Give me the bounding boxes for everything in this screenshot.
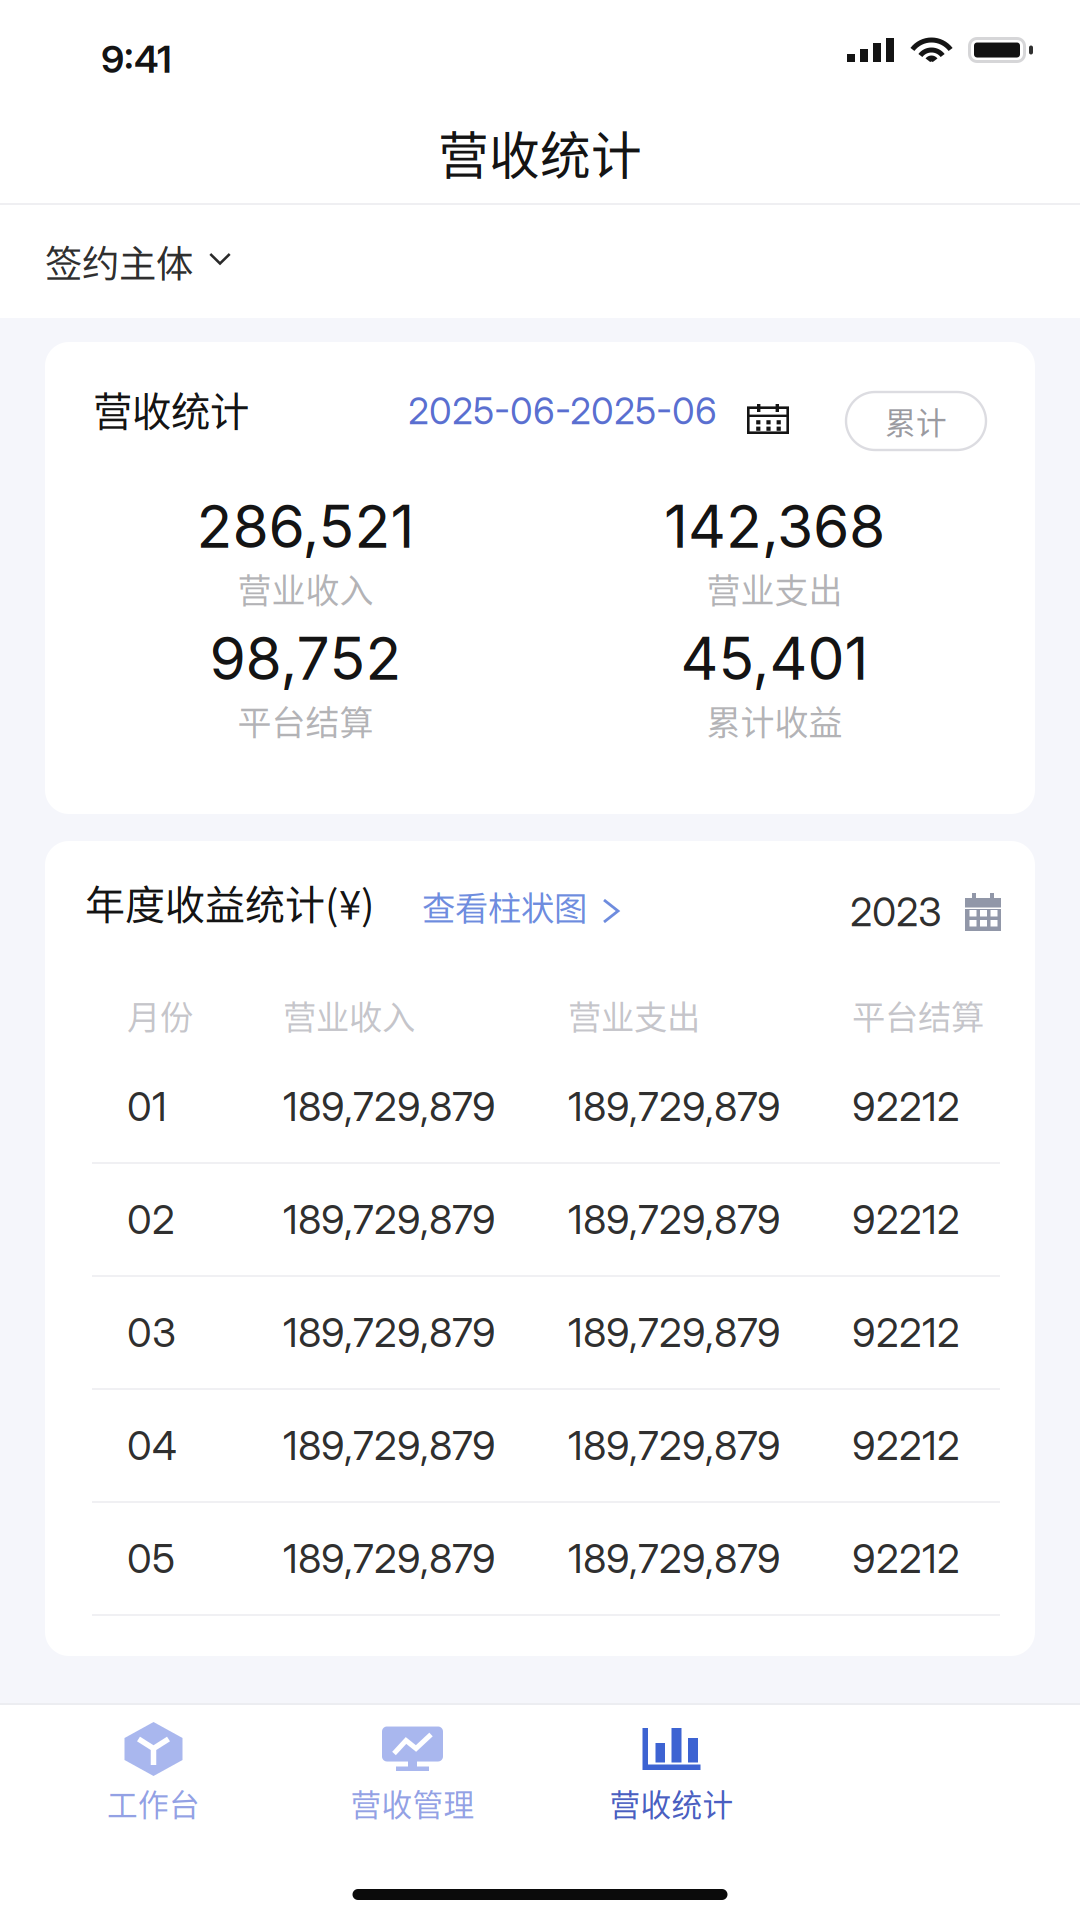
button[interactable]: 2023 bbox=[850, 888, 1001, 936]
staticText: 03 bbox=[127, 1308, 176, 1357]
staticText: 营收管理 bbox=[350, 1781, 474, 1825]
button[interactable]: 营收统计 bbox=[542, 1705, 801, 1845]
staticText: 查看柱状图 bbox=[422, 882, 587, 930]
staticText: 营收统计 bbox=[93, 380, 249, 437]
staticText: 92212 bbox=[852, 1308, 960, 1357]
staticText: 平台结算 bbox=[852, 991, 984, 1039]
staticText: 营业支出 bbox=[568, 991, 700, 1039]
staticText: 营业收入 bbox=[283, 991, 415, 1039]
staticText: 45,401 bbox=[680, 623, 868, 694]
staticText: 签约主体 bbox=[45, 234, 193, 289]
button[interactable]: 2025-06-2025-06 bbox=[408, 389, 789, 433]
staticText: 98,752 bbox=[209, 623, 401, 694]
staticText: 平台结算 bbox=[237, 696, 373, 745]
staticText: 92212 bbox=[852, 1082, 960, 1131]
staticText: 92212 bbox=[852, 1421, 960, 1470]
staticText: 189,729,879 bbox=[568, 1308, 781, 1357]
button[interactable]: 签约主体 bbox=[45, 208, 231, 315]
staticText: 02 bbox=[127, 1195, 175, 1244]
staticText: 189,729,879 bbox=[568, 1082, 781, 1131]
staticText: 2023 bbox=[850, 888, 942, 936]
staticText: 营业支出 bbox=[706, 564, 842, 613]
staticText: 累计 bbox=[885, 399, 947, 443]
staticText: 92212 bbox=[852, 1534, 960, 1583]
button[interactable]: 查看柱状图 bbox=[422, 882, 621, 930]
staticText: 2025-06-2025-06 bbox=[408, 389, 717, 433]
staticText: 工作台 bbox=[107, 1781, 200, 1825]
staticText: 189,729,879 bbox=[568, 1421, 781, 1470]
staticText: 92212 bbox=[852, 1195, 960, 1244]
staticText: 189,729,879 bbox=[283, 1421, 496, 1470]
staticText: 189,729,879 bbox=[283, 1195, 496, 1244]
staticText: 营收统计 bbox=[438, 116, 642, 189]
staticText: 9:41 bbox=[101, 36, 172, 82]
staticText: 05 bbox=[127, 1534, 175, 1583]
staticText: 189,729,879 bbox=[568, 1534, 781, 1583]
button[interactable]: 营收管理 bbox=[283, 1705, 542, 1845]
button[interactable]: 累计 bbox=[846, 392, 986, 450]
staticText: 01 bbox=[127, 1082, 167, 1131]
staticText: 286,521 bbox=[196, 491, 414, 562]
staticText: 月份 bbox=[127, 991, 193, 1039]
staticText: 年度收益统计(¥) bbox=[85, 873, 375, 931]
staticText: 04 bbox=[127, 1421, 177, 1470]
staticText: 累计收益 bbox=[706, 696, 842, 745]
staticText: 189,729,879 bbox=[568, 1195, 781, 1244]
staticText: 189,729,879 bbox=[283, 1308, 496, 1357]
staticText: 142,368 bbox=[664, 491, 885, 562]
staticText: 营业收入 bbox=[237, 564, 373, 613]
staticText: 189,729,879 bbox=[283, 1534, 496, 1583]
staticText: 189,729,879 bbox=[283, 1082, 496, 1131]
button[interactable]: 工作台 bbox=[24, 1705, 283, 1845]
staticText: 营收统计 bbox=[609, 1781, 733, 1825]
